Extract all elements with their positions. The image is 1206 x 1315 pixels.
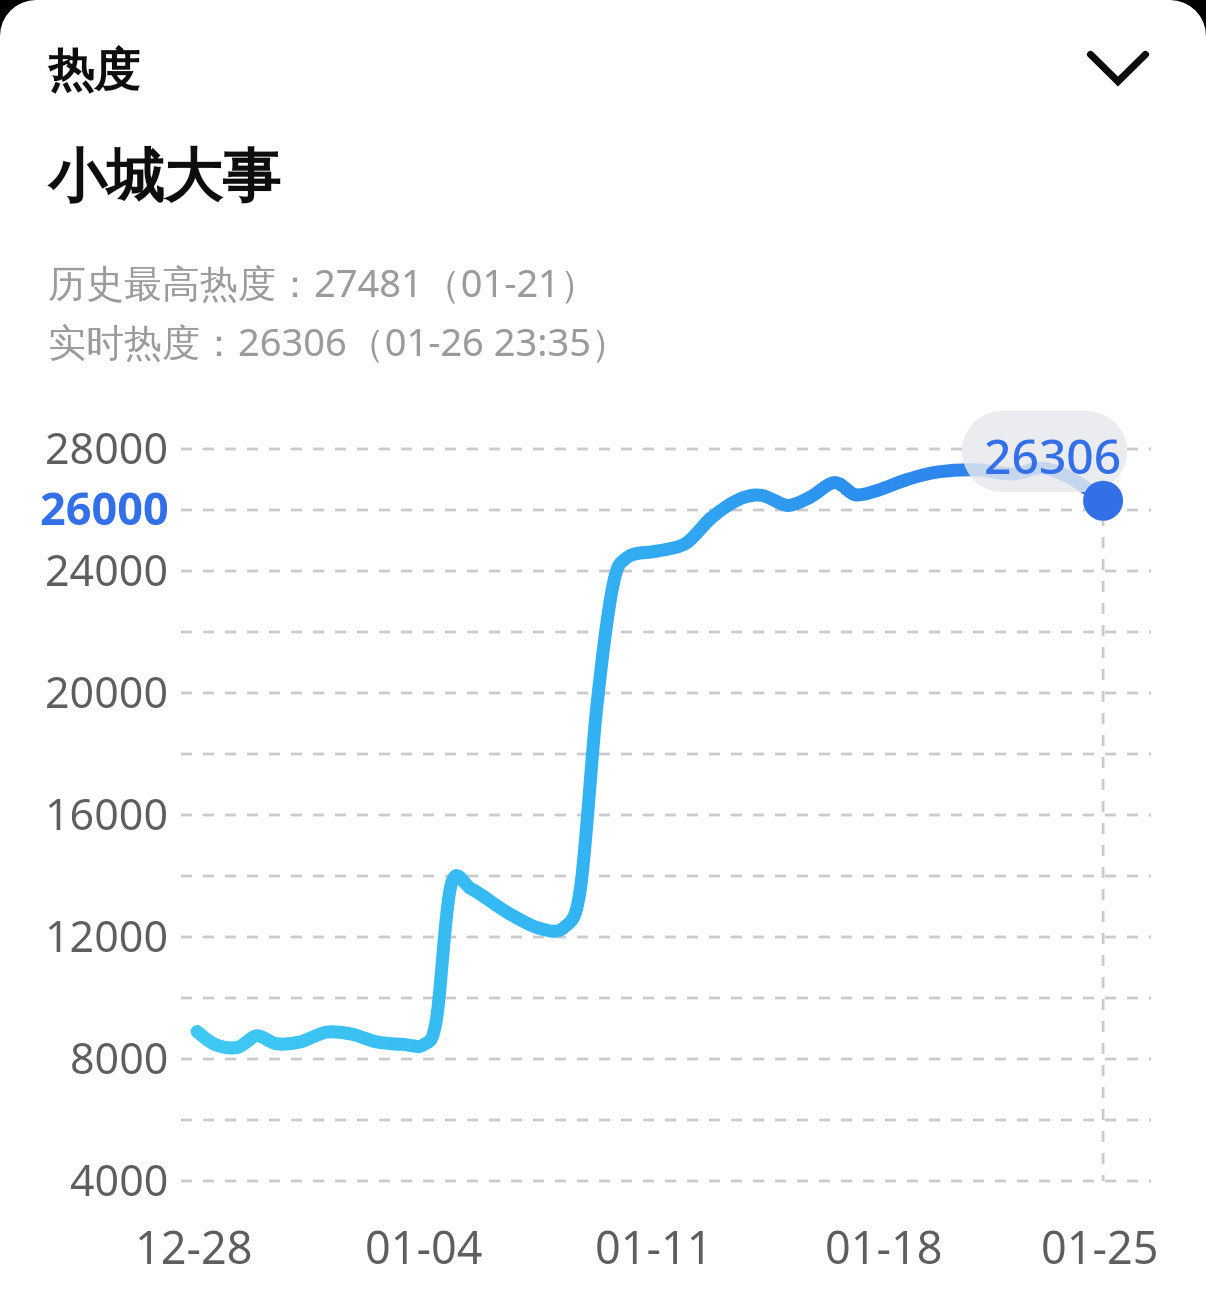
staticText: 16000	[45, 784, 168, 843]
staticText: 26000	[40, 477, 169, 538]
staticText: 8000	[70, 1028, 169, 1087]
staticText: 24000	[45, 540, 168, 599]
button[interactable]: 热度	[30, 26, 250, 112]
staticText: 01-04	[365, 1216, 483, 1277]
staticText: 12-28	[135, 1216, 253, 1277]
button[interactable]: Collapse	[1062, 18, 1174, 118]
staticText: 01-18	[825, 1216, 943, 1277]
staticText: 20000	[45, 662, 168, 721]
staticText: 实时热度：26306（01-26 23:35）	[48, 315, 629, 367]
staticText: 热度	[48, 42, 140, 100]
staticText: 12000	[45, 906, 168, 965]
staticText: 4000	[70, 1150, 169, 1209]
staticText: 01-25	[1041, 1216, 1159, 1277]
staticText: 01-11	[595, 1216, 713, 1277]
staticText: 28000	[45, 418, 168, 477]
staticText: 小城大事	[48, 140, 280, 213]
staticText: 历史最高热度：27481（01-21）	[48, 256, 598, 308]
staticText: 26306	[984, 423, 1122, 488]
